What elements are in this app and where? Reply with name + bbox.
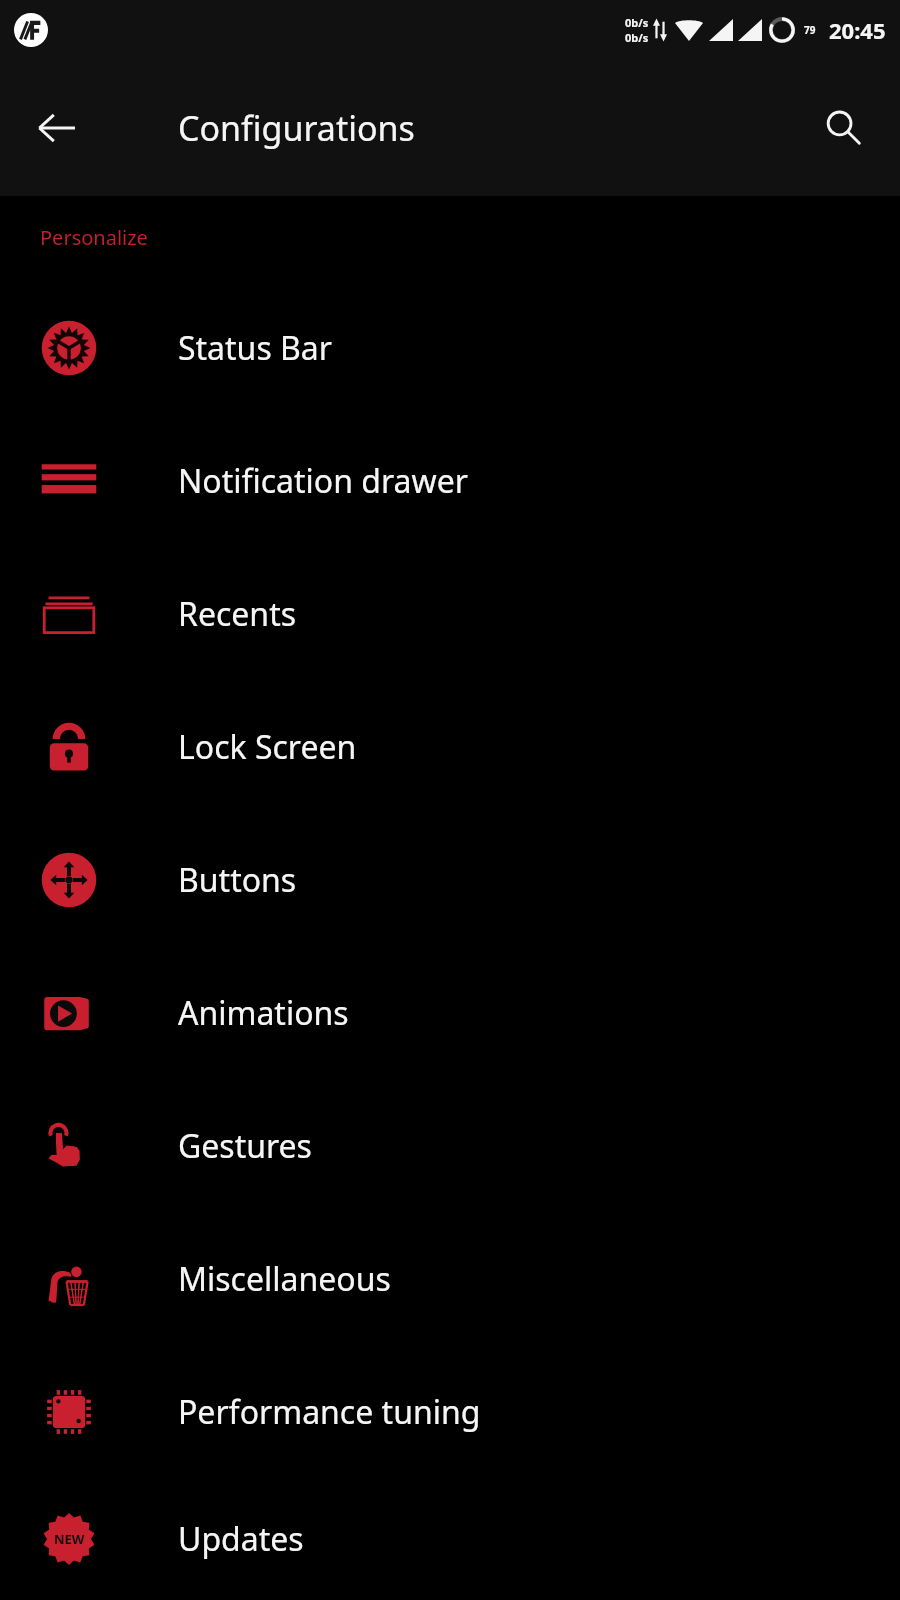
staticText: Updates (178, 1517, 304, 1561)
button[interactable]: Back (26, 97, 88, 159)
button[interactable]: Buttons (0, 813, 900, 946)
button[interactable]: Performance tuning (0, 1345, 900, 1478)
staticText: Notification drawer (178, 459, 468, 503)
staticText: Buttons (178, 858, 297, 902)
staticText: Animations (178, 991, 349, 1035)
staticText: Gestures (178, 1124, 312, 1168)
button[interactable]: Recents (0, 547, 900, 680)
staticText: 79 (804, 23, 816, 37)
staticText: Recents (178, 592, 297, 636)
button[interactable]: Miscellaneous (0, 1212, 900, 1345)
staticText: NEW (54, 1530, 85, 1548)
button[interactable]: Status Bar (0, 281, 900, 414)
staticText: Configurations (178, 105, 415, 151)
button[interactable]: Animations (0, 946, 900, 1079)
button[interactable]: Lock Screen (0, 680, 900, 813)
button[interactable]: Notification drawer (0, 414, 900, 547)
button[interactable]: NEW (0, 1478, 900, 1600)
staticText: Miscellaneous (178, 1257, 391, 1301)
staticText: 0b/s (625, 30, 649, 45)
staticText: Lock Screen (178, 725, 357, 769)
button[interactable]: Gestures (0, 1079, 900, 1212)
staticText: Personalize (40, 224, 148, 251)
staticText: Performance tuning (178, 1390, 481, 1434)
button[interactable]: Search (812, 97, 874, 159)
staticText: 20:45 (829, 15, 886, 45)
staticText: Status Bar (178, 326, 333, 370)
staticText: 0b/s (625, 15, 649, 30)
